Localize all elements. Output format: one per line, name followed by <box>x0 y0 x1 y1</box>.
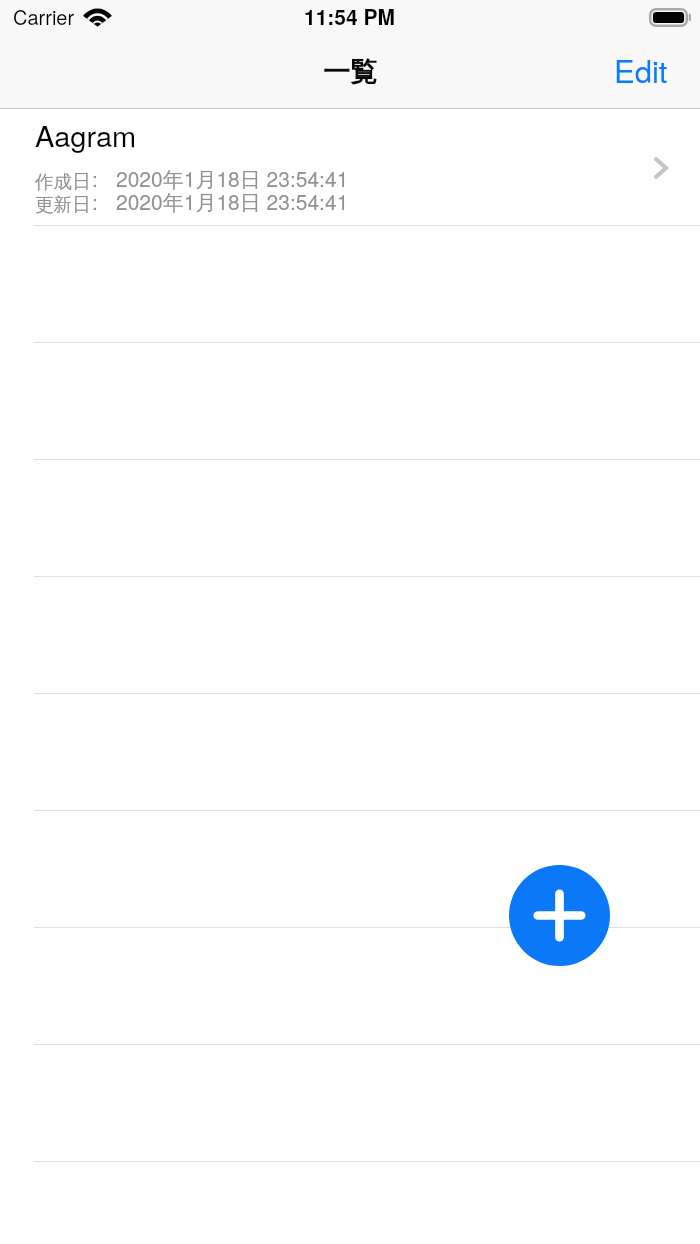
button[interactable]: Add new item <box>509 865 610 966</box>
staticText: 2020年1月18日 23:54:41 <box>116 163 349 193</box>
staticText: : <box>92 186 98 216</box>
staticText: 11:54 PM <box>304 1 396 31</box>
staticText: 作成日 <box>35 170 91 193</box>
staticText: Carrier <box>13 2 75 31</box>
staticText: 2020年1月18日 23:54:41 <box>116 186 349 216</box>
staticText: : <box>92 163 98 193</box>
button[interactable]: Aagram <box>0 109 700 226</box>
staticText: 一覧 <box>323 55 377 89</box>
staticText: Edit <box>614 47 668 91</box>
button[interactable]: Edit <box>598 41 700 97</box>
staticText: Aagram <box>35 114 137 156</box>
staticText: 更新日 <box>35 193 91 216</box>
